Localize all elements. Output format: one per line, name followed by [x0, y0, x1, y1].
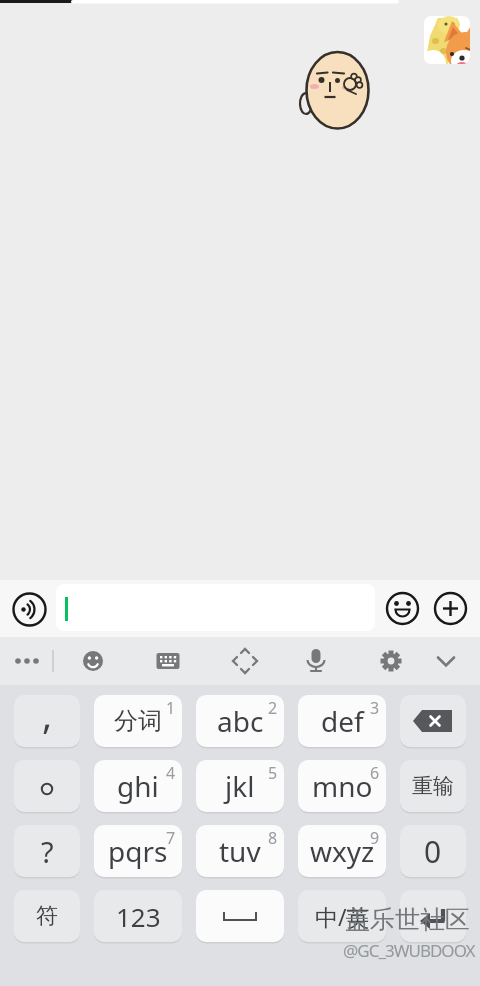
staticText: 符	[36, 902, 58, 930]
staticText: 盖乐世社区	[345, 904, 470, 935]
button[interactable]: jkl	[196, 760, 284, 812]
button[interactable]	[14, 760, 80, 812]
button[interactable]: mno	[298, 760, 386, 812]
button[interactable]: ,	[14, 695, 80, 747]
staticText: ,	[42, 695, 53, 740]
button[interactable]: ghi	[94, 760, 182, 812]
button[interactable]: def	[298, 695, 386, 747]
button[interactable]: 重输	[400, 760, 466, 812]
staticText: 1	[166, 697, 176, 719]
button[interactable]	[223, 637, 267, 685]
button[interactable]: tuv	[196, 825, 284, 877]
staticText: 2	[268, 697, 278, 719]
button[interactable]	[5, 637, 49, 685]
button[interactable]: pqrs	[94, 825, 182, 877]
button[interactable]: 符	[14, 890, 80, 942]
staticText: 重输	[412, 773, 454, 799]
staticText: 8	[268, 827, 278, 849]
button[interactable]	[294, 637, 338, 685]
staticText: 分词	[114, 706, 162, 736]
button[interactable]	[71, 637, 115, 685]
staticText: tuv	[219, 832, 261, 870]
staticText: @GC_3WUBDOOX	[343, 939, 475, 962]
staticText: 9	[370, 827, 380, 849]
staticText: pqrs	[108, 832, 168, 870]
button[interactable]	[424, 637, 468, 685]
button[interactable]	[400, 695, 466, 747]
button[interactable]	[196, 890, 284, 942]
button[interactable]: 0	[400, 825, 466, 877]
button[interactable]	[400, 890, 466, 942]
button[interactable]: wxyz	[298, 825, 386, 877]
staticText: def	[321, 702, 364, 740]
button[interactable]	[385, 591, 420, 626]
button[interactable]	[369, 637, 413, 685]
staticText: 7	[166, 827, 176, 849]
button[interactable]: ?	[14, 825, 80, 877]
staticText: mno	[312, 767, 373, 805]
staticText: abc	[217, 702, 264, 740]
staticText: 0	[424, 831, 442, 872]
staticText: 6	[370, 762, 380, 784]
button[interactable]: 123	[94, 890, 182, 942]
button[interactable]	[56, 584, 375, 631]
staticText: 中/英	[315, 901, 370, 932]
staticText: ghi	[117, 767, 159, 805]
button[interactable]: 分词	[94, 695, 182, 747]
staticText: 4	[166, 762, 176, 784]
staticText: 3	[370, 697, 380, 719]
button[interactable]	[433, 591, 468, 626]
staticText: jkl	[225, 767, 255, 805]
button[interactable]	[146, 637, 190, 685]
button[interactable]: abc	[196, 695, 284, 747]
staticText: 5	[268, 762, 278, 784]
staticText: 123	[116, 899, 161, 934]
staticText: ?	[41, 832, 54, 871]
button[interactable]	[12, 592, 47, 627]
button[interactable]	[424, 16, 470, 64]
button[interactable]: 中/英	[298, 890, 386, 942]
staticText: wxyz	[310, 832, 375, 870]
